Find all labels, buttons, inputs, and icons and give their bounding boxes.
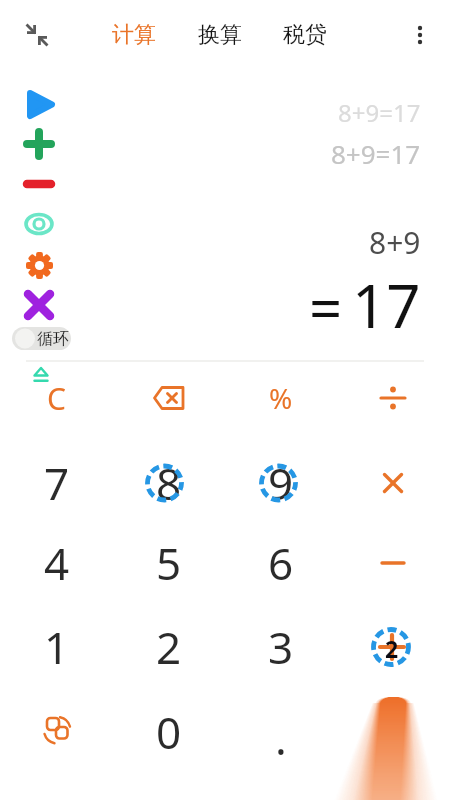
- button[interactable]: 计算: [74, 0, 194, 80]
- button[interactable]: [23, 170, 55, 198]
- staticText: 8+9: [369, 222, 421, 263]
- staticText: 8+9=17: [338, 96, 421, 129]
- button[interactable]: [348, 523, 438, 603]
- staticText: 5: [156, 533, 182, 593]
- button[interactable]: 4: [0, 518, 117, 608]
- button[interactable]: [124, 358, 214, 438]
- button[interactable]: 1: [0, 602, 117, 692]
- button[interactable]: [23, 128, 55, 160]
- button[interactable]: [24, 88, 56, 120]
- staticText: %: [269, 379, 293, 417]
- button[interactable]: 7: [0, 438, 117, 528]
- button[interactable]: C: [0, 353, 116, 443]
- button[interactable]: [348, 358, 438, 438]
- staticText: 8+9=17: [331, 136, 421, 171]
- staticText: 换算: [198, 21, 242, 49]
- staticText: 6: [268, 533, 294, 593]
- button[interactable]: 0: [109, 687, 229, 777]
- button[interactable]: [405, 20, 435, 50]
- staticText: 3: [268, 617, 294, 677]
- staticText: 0: [156, 702, 182, 762]
- button[interactable]: [348, 443, 438, 523]
- staticText: 1: [44, 617, 70, 677]
- staticText: C: [47, 378, 66, 419]
- button[interactable]: [23, 249, 56, 282]
- button[interactable]: 9: [221, 438, 341, 528]
- staticText: =: [309, 268, 343, 347]
- staticText: 2: [385, 633, 399, 664]
- button[interactable]: 2: [109, 602, 229, 692]
- button[interactable]: [22, 18, 58, 54]
- button[interactable]: [11, 690, 101, 770]
- button[interactable]: 5: [109, 518, 229, 608]
- staticText: 2: [156, 617, 182, 677]
- button[interactable]: 换算: [160, 0, 280, 80]
- staticText: 7: [44, 453, 70, 513]
- button[interactable]: 3: [221, 602, 341, 692]
- button[interactable]: %: [221, 353, 341, 443]
- staticText: .: [275, 708, 287, 768]
- button[interactable]: [347, 607, 437, 687]
- button[interactable]: [23, 208, 55, 240]
- button[interactable]: 循环: [12, 327, 71, 350]
- button[interactable]: 8: [109, 438, 229, 528]
- button[interactable]: .: [221, 693, 341, 783]
- button[interactable]: 6: [221, 518, 341, 608]
- staticText: 17: [352, 264, 421, 346]
- staticText: 8: [156, 453, 182, 513]
- staticText: 计算: [112, 21, 156, 49]
- staticText: 循环: [37, 329, 69, 349]
- staticText: 9: [268, 453, 294, 513]
- staticText: 税贷: [283, 21, 327, 49]
- button[interactable]: [23, 289, 55, 321]
- button[interactable]: 税贷: [245, 0, 365, 80]
- staticText: 4: [44, 533, 70, 593]
